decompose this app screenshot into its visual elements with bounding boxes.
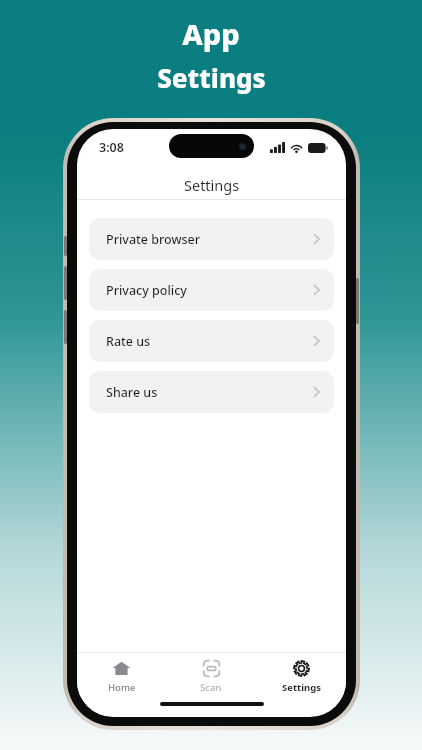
staticText: Privacy policy (106, 282, 187, 299)
button[interactable]: Home (77, 655, 166, 698)
button[interactable]: Rate us (89, 320, 334, 362)
staticText: Share us (106, 384, 158, 401)
button[interactable]: Scan (166, 655, 256, 698)
staticText: Scan (200, 681, 222, 694)
button[interactable]: Privacy policy (89, 269, 334, 311)
staticText: Home (108, 681, 136, 694)
staticText: Private browser (106, 231, 201, 248)
button[interactable]: Share us (89, 371, 334, 413)
staticText: Settings (282, 681, 321, 694)
staticText: 3:08 (99, 139, 124, 156)
staticText: App (182, 14, 240, 53)
button[interactable]: Settings (256, 655, 346, 698)
staticText: Settings (157, 60, 266, 95)
staticText: Settings (184, 175, 240, 195)
button[interactable]: Private browser (89, 218, 334, 260)
staticText: Rate us (106, 333, 151, 350)
